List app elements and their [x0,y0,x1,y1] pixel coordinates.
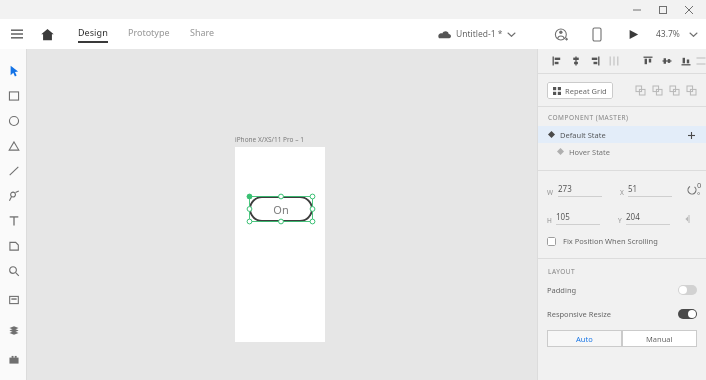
staticText: Default State [560,130,606,140]
button[interactable]: Minimize [624,0,650,19]
button[interactable]: Auto [547,330,622,347]
button[interactable]: Zoom [0,258,27,283]
button[interactable]: Invite to edit [549,22,573,46]
staticText: 43.7% [656,28,680,40]
button[interactable]: Ellipse [0,108,27,133]
button[interactable]: Share [184,22,221,47]
button[interactable]: Device preview [585,22,609,46]
button[interactable]: Artboard [0,233,27,258]
button[interactable]: Text [0,208,27,233]
button[interactable]: Boolean op 2 [649,82,666,99]
staticText: Prototype [128,26,170,38]
button[interactable]: Boolean op 1 [632,82,649,99]
button[interactable]: Responsive Resize [538,306,706,322]
button[interactable]: Boolean op 4 [683,82,700,99]
staticText: Y [618,216,622,225]
button[interactable]: Align bottom [676,49,695,73]
staticText: W [547,188,554,197]
button[interactable]: Align right [585,49,604,73]
button[interactable]: Untitled-1 * [434,25,519,43]
button[interactable]: Align center horizontally [566,49,585,73]
staticText: Share [190,26,215,38]
staticText: LAYOUT [548,267,576,276]
staticText: Hover State [569,147,611,157]
button[interactable]: 43.7% [653,25,700,43]
button[interactable]: Add state [685,129,697,141]
button[interactable]: Libraries [0,347,27,372]
button[interactable]: 51 [628,183,672,197]
staticText: Untitled-1 * [456,28,503,40]
button[interactable]: Prototype [122,22,176,47]
button[interactable]: Rotation [686,184,697,196]
button[interactable]: 273 [558,183,602,197]
button[interactable]: On [249,196,313,222]
button[interactable]: Design [72,22,114,47]
staticText: 51 [628,183,638,194]
button[interactable]: Assets [0,317,27,342]
staticText: Repeat Grid [565,86,607,96]
button[interactable]: Polygon [0,133,27,158]
button[interactable]: Default State [538,126,706,143]
button[interactable]: Layers [0,287,27,312]
staticText: Padding [547,285,577,295]
button[interactable]: On [235,147,325,342]
staticText: Auto [576,334,593,344]
staticText: Responsive Resize [547,309,611,319]
button[interactable]: Menu [4,21,30,47]
button[interactable]: Manual [622,330,697,347]
button[interactable]: Hover State [538,143,706,160]
staticText: H [547,216,552,225]
staticText: 105 [556,211,570,222]
staticText: COMPONENT (MASTER) [548,113,629,122]
button[interactable]: Repeat Grid [547,82,613,99]
button[interactable]: Distribute horizontally [604,49,623,73]
button[interactable]: Line [0,158,27,183]
button[interactable]: Pen [0,183,27,208]
button[interactable]: Close [676,0,702,19]
button[interactable]: Distribute vertically [695,49,706,73]
button[interactable]: Maximize [650,0,676,19]
button[interactable]: 105 [556,211,600,225]
button[interactable]: Select [0,58,27,83]
staticText: X [620,188,624,197]
button[interactable]: Padding [538,282,706,298]
button[interactable]: Desktop preview [621,22,645,46]
staticText: Fix Position When Scrolling [563,236,658,246]
button[interactable]: Align left [547,49,566,73]
button[interactable]: Rectangle [0,83,27,108]
staticText: On [273,202,289,217]
staticText: iPhone X/XS/11 Pro – 1 [235,135,304,144]
button[interactable]: 204 [626,211,670,225]
button[interactable]: Flip horizontal [682,212,695,225]
button[interactable]: Boolean op 3 [666,82,683,99]
staticText: 204 [626,211,640,222]
button[interactable]: Fix Position When Scrolling [538,234,706,248]
button[interactable]: Home [34,21,60,47]
staticText: Manual [646,334,673,344]
button[interactable]: Align top [638,49,657,73]
button[interactable]: Align middle [657,49,676,73]
staticText: 273 [558,183,572,194]
staticText: Design [78,26,108,38]
